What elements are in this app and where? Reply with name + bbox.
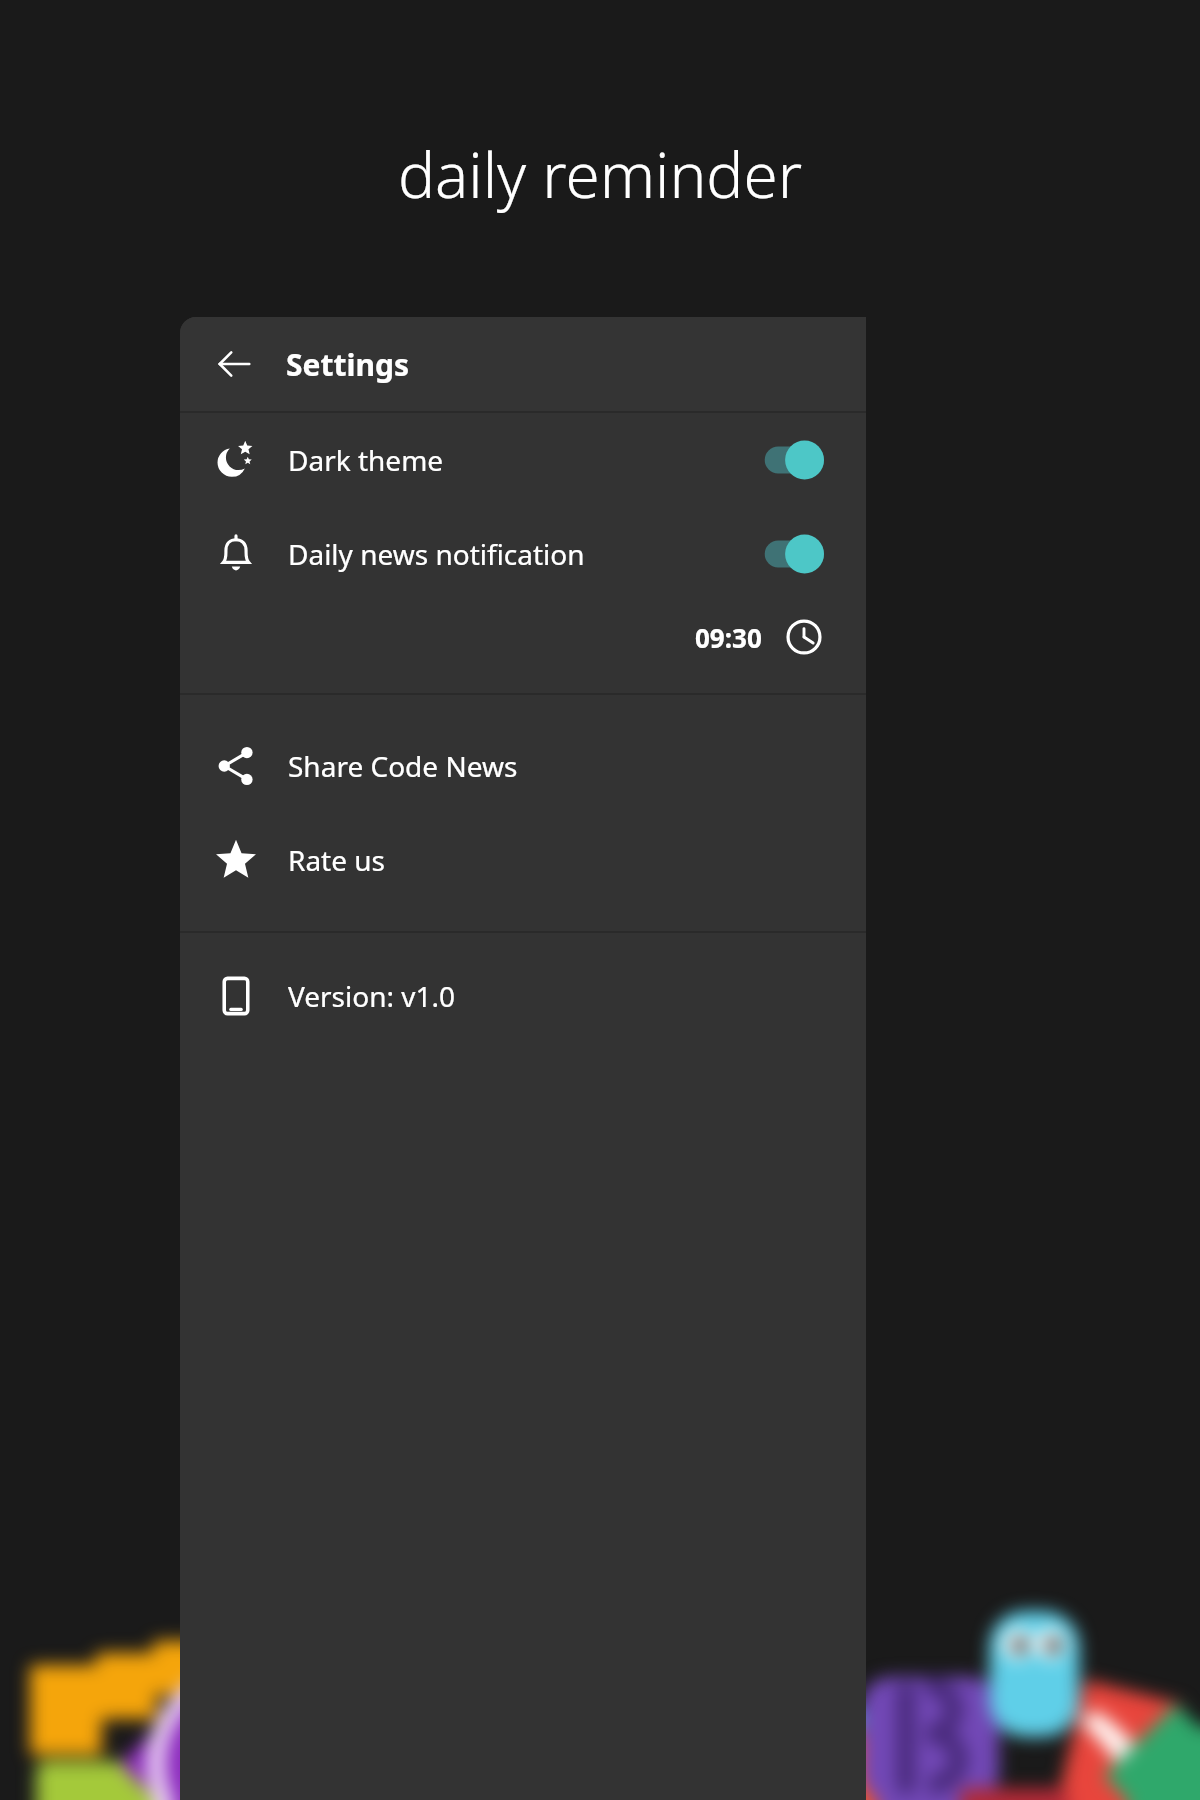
other: Pick time [784,617,824,657]
staticText: 09:30 [695,620,762,655]
button[interactable]: Back [212,342,256,386]
button[interactable]: Daily news notification [180,507,866,601]
button[interactable]: Daily news notification switch [748,527,824,581]
button[interactable]: Dark theme switch [748,433,824,487]
button[interactable]: Back [180,317,866,411]
button[interactable]: 09:30 [180,601,866,673]
button[interactable]: Dark theme [180,413,866,507]
staticText: Share Code News [288,747,518,785]
staticText: daily reminder [0,132,1200,216]
staticText: Settings [286,344,409,385]
staticText: Version: v1.0 [288,977,456,1015]
staticText: Rate us [288,841,386,879]
button[interactable]: Version: v1.0 [180,949,866,1043]
button[interactable]: Share Code News [180,719,866,813]
staticText: Daily news notification [288,535,585,573]
button[interactable]: Rate us [180,813,866,907]
staticText: Dark theme [288,441,444,479]
